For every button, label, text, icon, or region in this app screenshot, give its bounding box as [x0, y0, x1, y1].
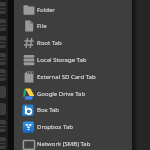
staticText: Box Tab	[37, 106, 60, 114]
staticText: Folder	[37, 6, 55, 14]
button[interactable]: File	[14, 17, 132, 34]
button[interactable]: External SD Card Tab	[14, 68, 132, 85]
staticText: External SD Card Tab	[37, 73, 96, 81]
button[interactable]: Google Drive Tab	[14, 85, 132, 102]
button[interactable]: Box Tab	[14, 101, 132, 118]
button[interactable]: Folder	[14, 1, 132, 18]
staticText: Dropbox Tab	[37, 123, 73, 131]
staticText: Root Tab	[37, 39, 62, 47]
staticText: Network (SMB) Tab	[37, 140, 91, 148]
staticText: Google Drive Tab	[37, 90, 86, 98]
button[interactable]: Dropbox Tab	[14, 118, 132, 135]
button[interactable]: Network (SMB) Tab	[14, 135, 132, 150]
staticText: File	[37, 22, 47, 30]
button[interactable]: Root Tab	[14, 34, 132, 51]
button[interactable]: Local Storage Tab	[14, 51, 132, 68]
staticText: Local Storage Tab	[37, 56, 87, 64]
